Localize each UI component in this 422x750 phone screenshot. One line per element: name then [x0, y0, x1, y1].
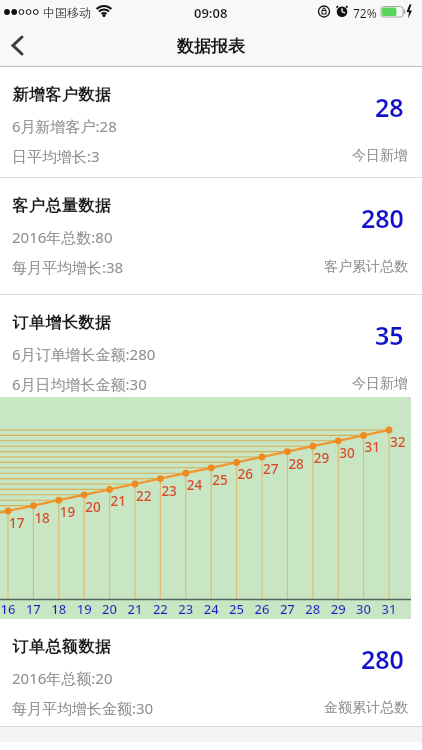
staticText: 订单总额数据: [12, 637, 111, 657]
staticText: 72%: [353, 5, 377, 21]
staticText: 中国移动: [43, 5, 91, 20]
staticText: 今日新增: [352, 375, 408, 393]
staticText: 订单增长数据: [12, 313, 111, 333]
button[interactable]: [0, 24, 40, 67]
staticText: 客户累计总数: [324, 258, 408, 276]
staticText: 6月新增客户:28: [12, 116, 117, 136]
staticText: 6月日均增长金额:30: [12, 374, 147, 394]
staticText: 28: [375, 90, 404, 124]
staticText: 2016年总额:20: [12, 668, 113, 688]
staticText: 数据报表: [177, 36, 245, 57]
staticText: 每月平均增长:38: [12, 257, 124, 277]
staticText: 280: [361, 642, 404, 676]
staticText: 35: [375, 318, 404, 352]
button[interactable]: 客户总量数据: [0, 178, 422, 294]
staticText: 今日新增: [352, 147, 408, 165]
staticText: 280: [361, 201, 404, 235]
staticText: 新增客户数据: [12, 85, 111, 105]
staticText: 日平均增长:3: [12, 146, 100, 166]
button[interactable]: 订单增长数据: [0, 295, 422, 397]
staticText: 每月平均增长金额:30: [12, 698, 154, 718]
staticText: 2016年总数:80: [12, 227, 113, 247]
staticText: 客户总量数据: [12, 196, 111, 216]
button[interactable]: 新增客户数据: [0, 67, 422, 177]
staticText: 09:08: [194, 4, 228, 22]
button[interactable]: 订单总额数据: [0, 619, 422, 726]
staticText: 金额累计总数: [324, 699, 408, 717]
staticText: 6月订单增长金额:280: [12, 344, 156, 364]
